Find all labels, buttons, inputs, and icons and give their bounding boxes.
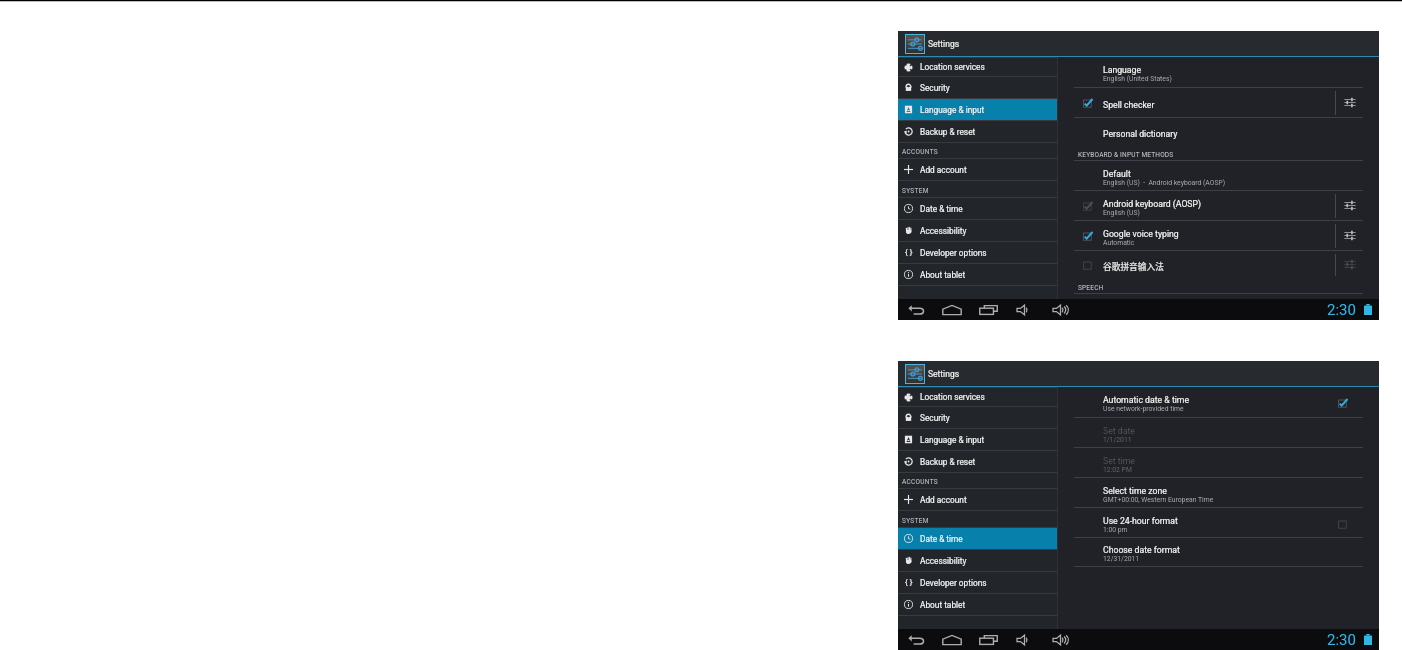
- button[interactable]: Date & time: [898, 198, 1057, 219]
- button[interactable]: Set time: [1058, 448, 1379, 477]
- button[interactable]: Security: [898, 407, 1057, 428]
- staticText: Date & time: [920, 204, 963, 214]
- button[interactable]: Volume down: [1006, 299, 1042, 320]
- staticText: Accessibility: [920, 226, 967, 236]
- button[interactable]: Accessibility: [898, 220, 1057, 241]
- staticText: Select time zone: [1103, 486, 1167, 496]
- staticText: English (US): [1103, 209, 1140, 217]
- staticText: Google voice typing: [1103, 229, 1179, 239]
- staticText: Security: [920, 83, 950, 93]
- staticText: KEYBOARD & INPUT METHODS: [1078, 151, 1174, 159]
- staticText: SYSTEM: [902, 187, 929, 195]
- button[interactable]: Location services: [898, 58, 1057, 76]
- staticText: Language: [1103, 65, 1142, 75]
- button[interactable]: Select time zone: [1058, 478, 1379, 507]
- button[interactable]: About tablet: [898, 264, 1057, 285]
- button[interactable]: Volume down: [1006, 629, 1042, 650]
- staticText: ACCOUNTS: [902, 478, 938, 486]
- button[interactable]: Spell checker: [1058, 88, 1379, 117]
- button[interactable]: Backup & reset: [898, 451, 1057, 472]
- staticText: Personal dictionary: [1103, 129, 1178, 139]
- staticText: Language & input: [920, 105, 985, 115]
- staticText: Set date: [1103, 426, 1135, 436]
- staticText: About tablet: [920, 270, 966, 280]
- button[interactable]: Location services: [898, 388, 1057, 406]
- staticText: Developer options: [920, 578, 987, 588]
- staticText: Add account: [920, 165, 967, 175]
- button[interactable]: Back: [898, 629, 934, 650]
- staticText: Date & time: [920, 534, 963, 544]
- staticText: 12/31/2011: [1103, 555, 1140, 563]
- staticText: Spell checker: [1103, 100, 1155, 110]
- staticText: Automatic date & time: [1103, 395, 1190, 405]
- button[interactable]: Personal dictionary: [1058, 118, 1379, 145]
- staticText: Add account: [920, 495, 967, 505]
- staticText: Backup & reset: [920, 457, 976, 467]
- button[interactable]: Date & time: [898, 528, 1057, 549]
- button[interactable]: Settings for Android keyboard (AOSP): [1336, 191, 1364, 220]
- staticText: Location services: [920, 392, 985, 402]
- staticText: SYSTEM: [902, 517, 929, 525]
- button[interactable]: Backup & reset: [898, 121, 1057, 142]
- staticText: 谷歌拼音输入法: [1103, 260, 1164, 273]
- staticText: 12:02 PM: [1103, 466, 1132, 474]
- button[interactable]: 谷歌拼音输入法: [1058, 251, 1379, 278]
- button[interactable]: Add account: [898, 159, 1057, 180]
- button[interactable]: Security: [898, 77, 1057, 98]
- staticText: Use network-provided time: [1103, 405, 1184, 413]
- button[interactable]: Settings for Spell checker: [1336, 88, 1364, 117]
- button[interactable]: Language & input: [898, 99, 1057, 120]
- button[interactable]: Volume up: [1042, 299, 1078, 320]
- button[interactable]: Settings for Google voice typing: [1336, 221, 1364, 250]
- button[interactable]: Home: [934, 629, 970, 650]
- button[interactable]: Set date: [1058, 418, 1379, 447]
- staticText: Settings: [928, 39, 960, 49]
- staticText: English (US) - Android keyboard (AOSP): [1103, 179, 1226, 187]
- button[interactable]: Recent apps: [970, 299, 1006, 320]
- staticText: ACCOUNTS: [902, 148, 938, 156]
- button[interactable]: Automatic date & time: [1058, 387, 1379, 417]
- staticText: Security: [920, 413, 950, 423]
- staticText: { }: [905, 248, 913, 257]
- button[interactable]: Settings for 谷歌拼音输入法: [1336, 251, 1364, 278]
- staticText: Use 24-hour format: [1103, 516, 1178, 526]
- staticText: Set time: [1103, 456, 1135, 466]
- button[interactable]: Android keyboard (AOSP): [1058, 191, 1379, 220]
- button[interactable]: Add account: [898, 489, 1057, 510]
- staticText: English (United States): [1103, 75, 1172, 83]
- staticText: Backup & reset: [920, 127, 976, 137]
- staticText: 2:30: [1327, 631, 1356, 649]
- button[interactable]: Language & input: [898, 429, 1057, 450]
- button[interactable]: Back: [898, 299, 934, 320]
- button[interactable]: Use 24-hour format: [1058, 508, 1379, 537]
- button[interactable]: Accessibility: [898, 550, 1057, 571]
- button[interactable]: Recent apps: [970, 629, 1006, 650]
- button[interactable]: Volume up: [1042, 629, 1078, 650]
- button[interactable]: Home: [934, 299, 970, 320]
- staticText: 1:00 pm: [1103, 526, 1128, 534]
- staticText: Choose date format: [1103, 545, 1180, 555]
- staticText: About tablet: [920, 600, 966, 610]
- staticText: Android keyboard (AOSP): [1103, 199, 1202, 209]
- staticText: GMT+00:00, Western European Time: [1103, 496, 1214, 504]
- staticText: Default: [1103, 169, 1131, 179]
- button[interactable]: { }: [898, 242, 1057, 263]
- button[interactable]: Language: [1058, 57, 1379, 87]
- staticText: 2:30: [1327, 301, 1356, 319]
- button[interactable]: Google voice typing: [1058, 221, 1379, 250]
- button[interactable]: Default: [1058, 161, 1379, 190]
- staticText: Automatic: [1103, 239, 1135, 247]
- staticText: 1/1/2011: [1103, 436, 1132, 444]
- staticText: SPEECH: [1078, 284, 1104, 292]
- staticText: Location services: [920, 62, 985, 72]
- staticText: Accessibility: [920, 556, 967, 566]
- button[interactable]: Choose date format: [1058, 538, 1379, 566]
- staticText: Developer options: [920, 248, 987, 258]
- button[interactable]: { }: [898, 572, 1057, 593]
- staticText: { }: [905, 578, 913, 587]
- button[interactable]: About tablet: [898, 594, 1057, 615]
- staticText: Language & input: [920, 435, 985, 445]
- staticText: Settings: [928, 369, 960, 379]
